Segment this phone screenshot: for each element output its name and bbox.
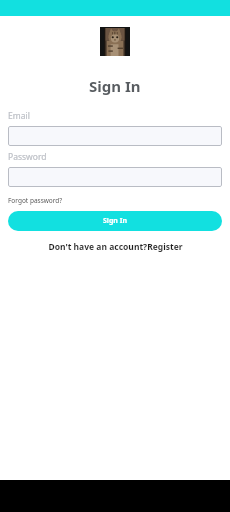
button[interactable]: Don't have an account?Register (48, 241, 183, 253)
staticText: Sign In (103, 216, 128, 226)
button[interactable]: Sign In (8, 211, 222, 231)
button[interactable] (8, 126, 222, 146)
staticText: Sign In (89, 76, 141, 96)
staticText: Email (8, 110, 30, 122)
staticText: Don't have an account?Register (48, 241, 183, 253)
staticText: Password (8, 151, 47, 163)
staticText: Forgot password? (8, 196, 63, 205)
button[interactable]: Forgot password? (8, 196, 63, 205)
button[interactable] (8, 167, 222, 187)
button[interactable]: App logo (100, 27, 130, 56)
